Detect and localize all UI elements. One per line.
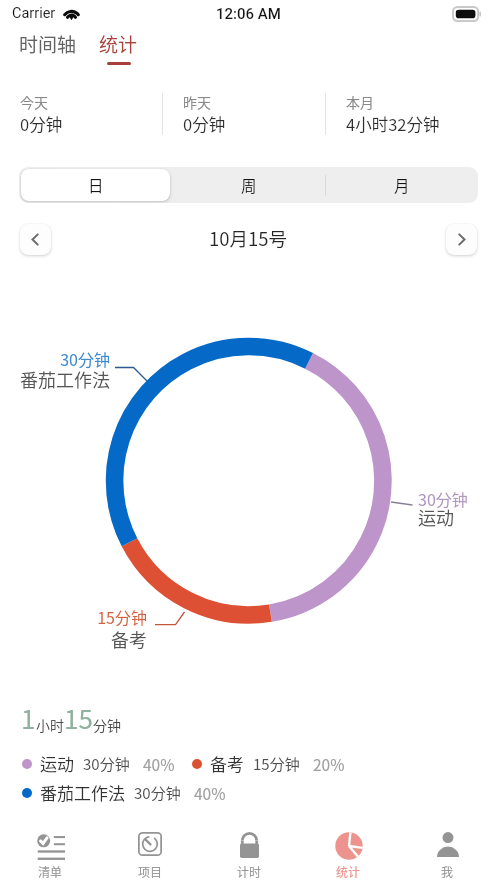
button[interactable]: Next day [446,224,477,255]
staticText: 清单 [38,863,63,880]
staticText: 40% [143,753,175,775]
staticText: 4小时32分钟 [346,112,440,136]
staticText: 12:06 AM [216,5,281,23]
staticText: 0分钟 [20,112,63,136]
staticText: 15分钟 [253,753,300,775]
staticText: 昨天 [183,92,211,112]
staticText: 月 [394,174,410,196]
staticText: 番茄工作法 [0,366,110,392]
staticText: 今天 [20,92,48,112]
staticText: 小时 [36,715,64,735]
button[interactable]: 统计 [99,30,138,65]
button[interactable]: 日 [19,167,172,203]
staticText: 番茄工作法 [40,780,125,805]
staticText: 时间轴 [19,30,77,58]
staticText: 15分钟 [0,605,147,628]
staticText: 日 [88,174,104,196]
staticText: 运动 [418,504,454,530]
staticText: 30分钟 [83,753,130,775]
staticText: 运动 [40,751,74,776]
staticText: 10月15号 [209,225,288,252]
button[interactable]: 时间轴 [19,30,77,58]
staticText: 周 [241,174,257,196]
button[interactable]: Previous day [20,224,51,255]
button[interactable]: 月 [325,167,478,203]
button[interactable]: 我 [398,817,497,883]
button[interactable]: 统计 [299,817,398,883]
button[interactable]: 清单 [0,817,100,883]
staticText: 1 [21,699,36,737]
staticText: 本月 [346,92,374,112]
staticText: 30分钟 [134,782,181,804]
staticText: 备考 [210,751,244,776]
staticText: 统计 [336,863,361,880]
staticText: 我 [441,863,454,880]
staticText: 15 [64,699,93,737]
button[interactable]: 项目 [100,817,200,883]
button[interactable]: 计时 [200,817,299,883]
staticText: 备考 [0,626,147,652]
staticText: 20% [313,753,345,775]
staticText: 40% [194,782,226,804]
staticText: 统计 [99,30,138,58]
staticText: 计时 [237,863,262,880]
button[interactable]: 周 [172,167,325,203]
staticText: 30分钟 [0,347,110,370]
staticText: 30分钟 [418,487,468,510]
staticText: 0分钟 [183,112,226,136]
staticText: 项目 [138,863,163,880]
staticText: Carrier [12,5,56,22]
staticText: 分钟 [93,715,121,735]
